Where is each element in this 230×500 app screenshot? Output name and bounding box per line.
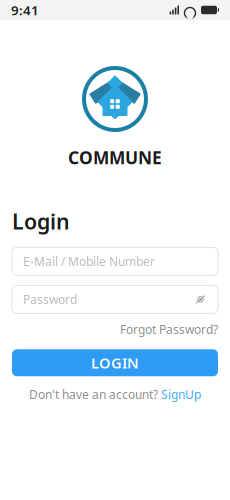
button[interactable]: E-Mail / Mobile Number — [12, 247, 218, 275]
staticText: Don't have an account? — [29, 386, 161, 402]
button[interactable]: Forgot Password? — [120, 321, 218, 337]
staticText: COMMUNE — [68, 146, 162, 169]
staticText: SignUp — [161, 386, 201, 402]
staticText: Password — [23, 291, 77, 307]
staticText: Login — [12, 207, 70, 235]
staticText: E-Mail / Mobile Number — [23, 253, 155, 269]
staticText: LOGIN — [91, 353, 139, 372]
button[interactable]: Password — [12, 285, 218, 313]
button[interactable]: LOGIN — [12, 349, 218, 376]
button[interactable]: SignUp — [161, 386, 201, 402]
staticText: Forgot Password? — [120, 321, 218, 337]
staticText: 9:41 — [11, 1, 39, 19]
